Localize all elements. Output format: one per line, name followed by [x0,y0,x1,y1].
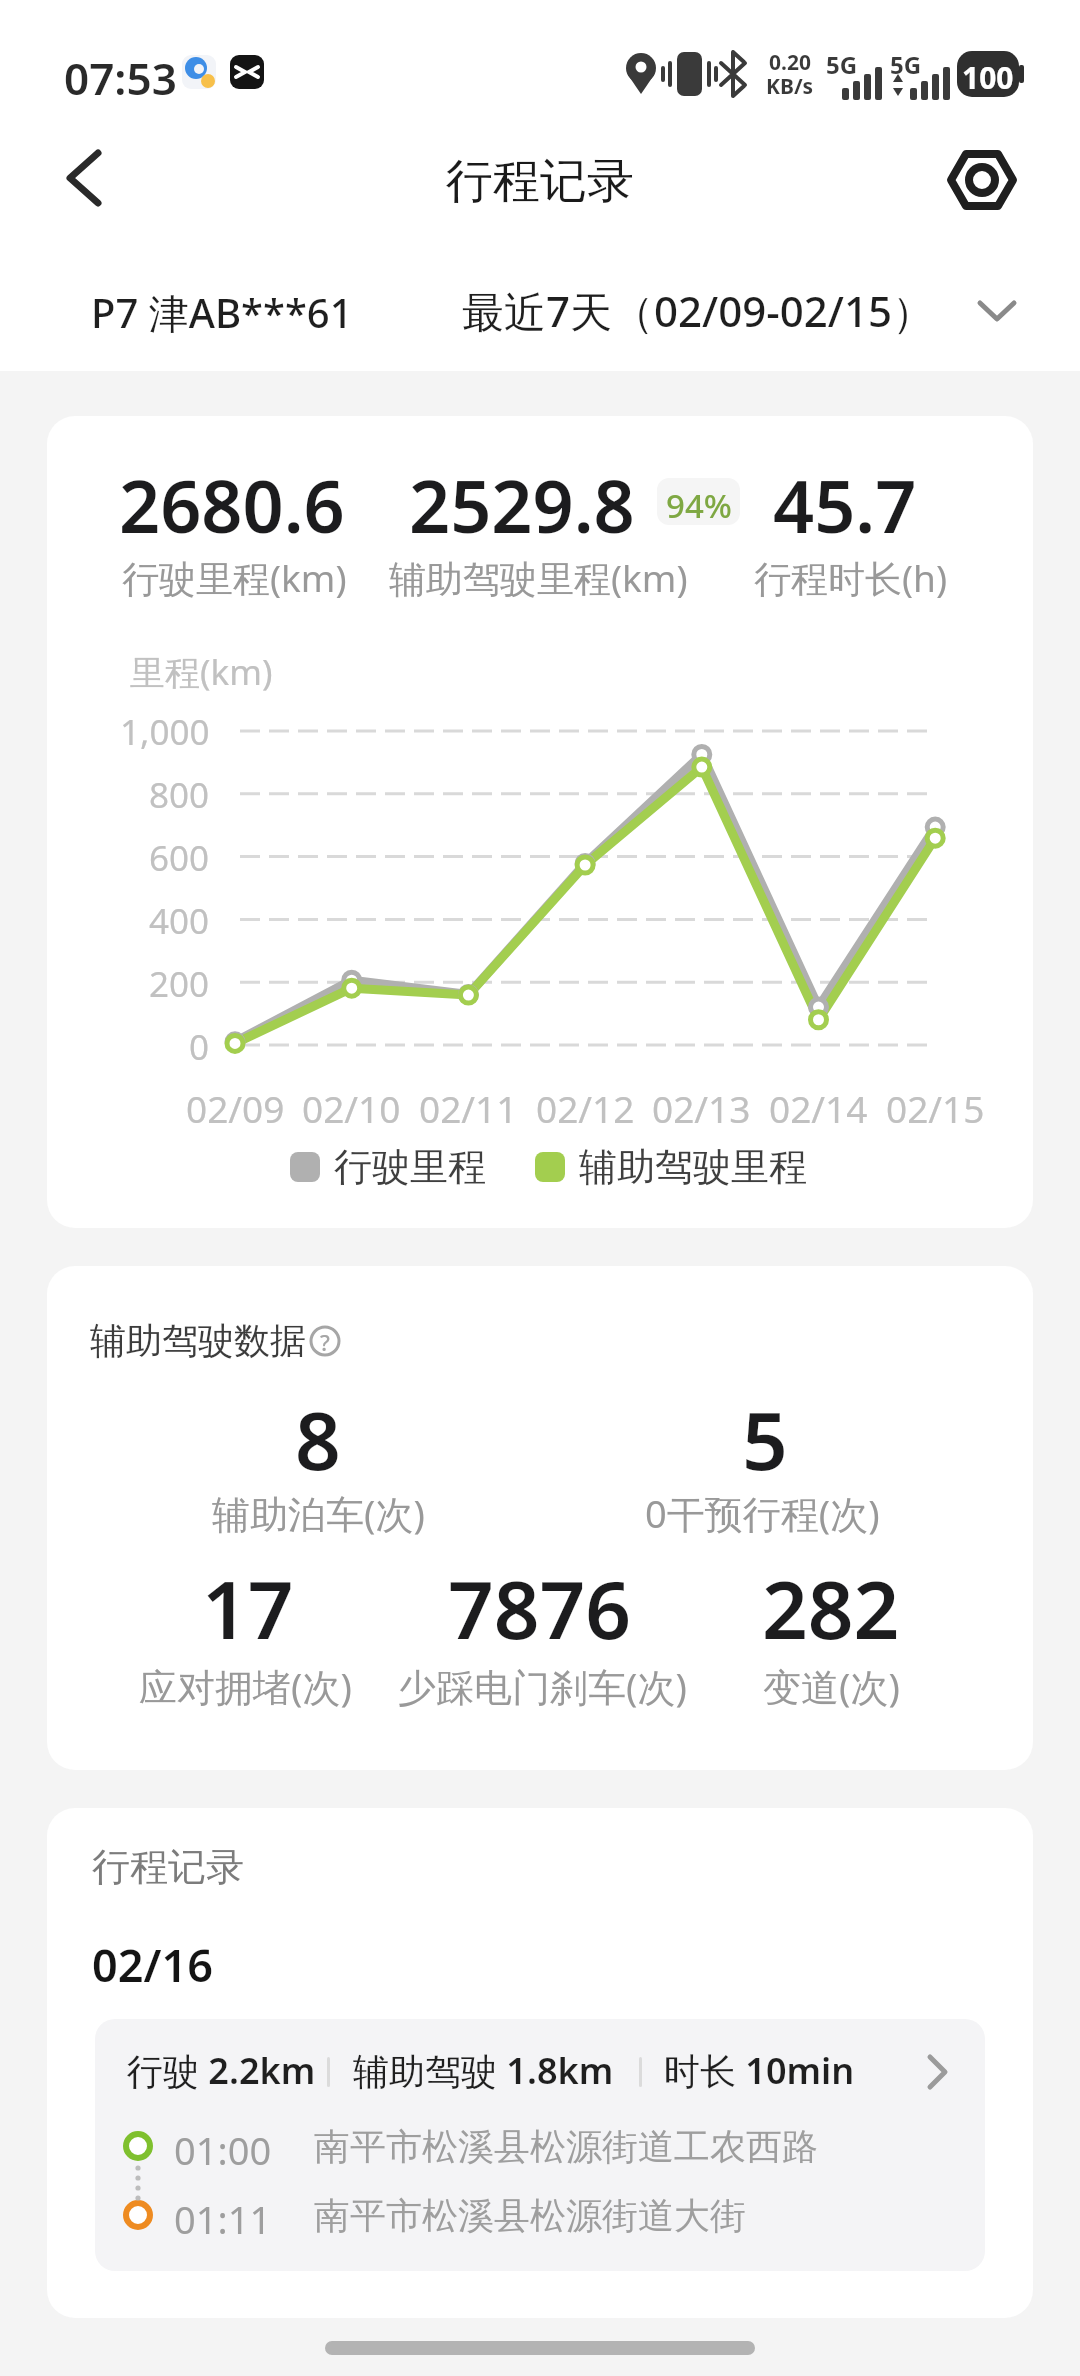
staticText: 0.20 [769,48,811,77]
staticText: 行程记录 [446,152,634,211]
staticText: 02/09 [186,1083,285,1133]
staticText: 100 [962,57,1014,98]
staticText: 5G [890,48,922,81]
button[interactable] [48,142,120,214]
staticText: 02/16 [92,1934,213,1995]
staticText: 7876 [448,1553,632,1662]
staticText: 行驶里程(km) [122,552,347,603]
staticText: 1,000 [120,708,210,756]
staticText: 0 [189,1023,210,1071]
staticText: KB/s [766,72,814,101]
staticText: 辅助泊车(次) [212,1487,425,1539]
staticText: 800 [149,771,210,819]
staticText: 南平市松溪县松源街道工农西路 [314,2124,818,2169]
staticText: 02/13 [652,1083,751,1133]
button[interactable] [80,275,360,345]
staticText: 最近7天（02/09-02/15） [462,282,935,339]
staticText: 时长 10min [664,2046,855,2095]
staticText: 辅助驾驶 1.8km [353,2046,614,2095]
staticText: 辅助驾驶数据 [90,1318,306,1363]
staticText: 南平市松溪县松源街道大街 [314,2193,746,2238]
staticText: 07:53 [64,48,177,108]
staticText: 400 [149,897,210,945]
staticText: 变道(次) [763,1660,900,1712]
staticText: 行驶 2.2km [127,2046,316,2095]
staticText: 02/14 [769,1083,868,1133]
staticText: 02/11 [419,1083,518,1133]
staticText: 0干预行程(次) [645,1487,880,1539]
staticText: 02/10 [302,1083,401,1133]
staticText: 02/15 [886,1083,985,1133]
staticText: 2529.8 [409,456,635,554]
staticText: 行驶里程 [334,1143,486,1191]
staticText: 行程时长(h) [754,552,948,603]
staticText: 辅助驾驶里程 [579,1143,807,1191]
staticText: 5 [742,1384,788,1493]
button[interactable] [450,275,1020,345]
staticText: 5G [826,48,858,81]
staticText: 01:00 [174,2124,272,2176]
staticText: 600 [149,834,210,882]
staticText: 282 [762,1553,900,1662]
staticText: 17 [202,1553,294,1662]
staticText: 2680.6 [119,456,345,554]
staticText: P7 津AB***61 [91,285,353,340]
staticText: 02/12 [536,1083,635,1133]
button[interactable] [940,140,1024,224]
staticText: 200 [149,960,210,1008]
staticText: ? [320,1327,330,1357]
staticText: 01:11 [174,2193,272,2245]
staticText: 少踩电门刹车(次) [398,1660,687,1712]
staticText: 45.7 [773,456,917,554]
staticText: 8 [295,1384,341,1493]
staticText: 应对拥堵(次) [139,1660,352,1712]
staticText: 行程记录 [92,1843,244,1891]
staticText: 94% [666,483,732,528]
staticText: 辅助驾驶里程(km) [389,552,688,603]
button[interactable] [95,2019,985,2271]
staticText: 里程(km) [130,648,273,696]
